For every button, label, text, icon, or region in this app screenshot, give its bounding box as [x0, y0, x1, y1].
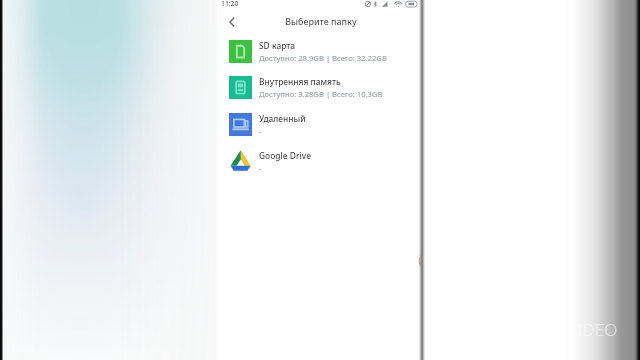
- staticText: Удаленный: [259, 113, 306, 124]
- button[interactable]: Внутренняя память: [217, 69, 421, 106]
- button[interactable]: Назад: [222, 12, 242, 32]
- staticText: -: [259, 163, 262, 173]
- staticText: Внутренняя память: [259, 76, 341, 87]
- staticText: 11:20: [221, 0, 239, 8]
- staticText: Доступно: 28.9GB | Всего: 32.22GB: [259, 53, 387, 63]
- staticText: -: [259, 126, 262, 136]
- staticText: IDEO: [577, 318, 618, 341]
- button[interactable]: Google Drive: [217, 143, 421, 180]
- button[interactable]: Удаленный: [217, 106, 421, 143]
- staticText: Выберите папку: [285, 15, 357, 27]
- staticText: Google Drive: [259, 150, 312, 161]
- button[interactable]: SD карта: [217, 33, 421, 70]
- staticText: SD карта: [259, 40, 296, 51]
- staticText: Доступно: 3.28GB | Всего: 10.3GB: [259, 89, 383, 99]
